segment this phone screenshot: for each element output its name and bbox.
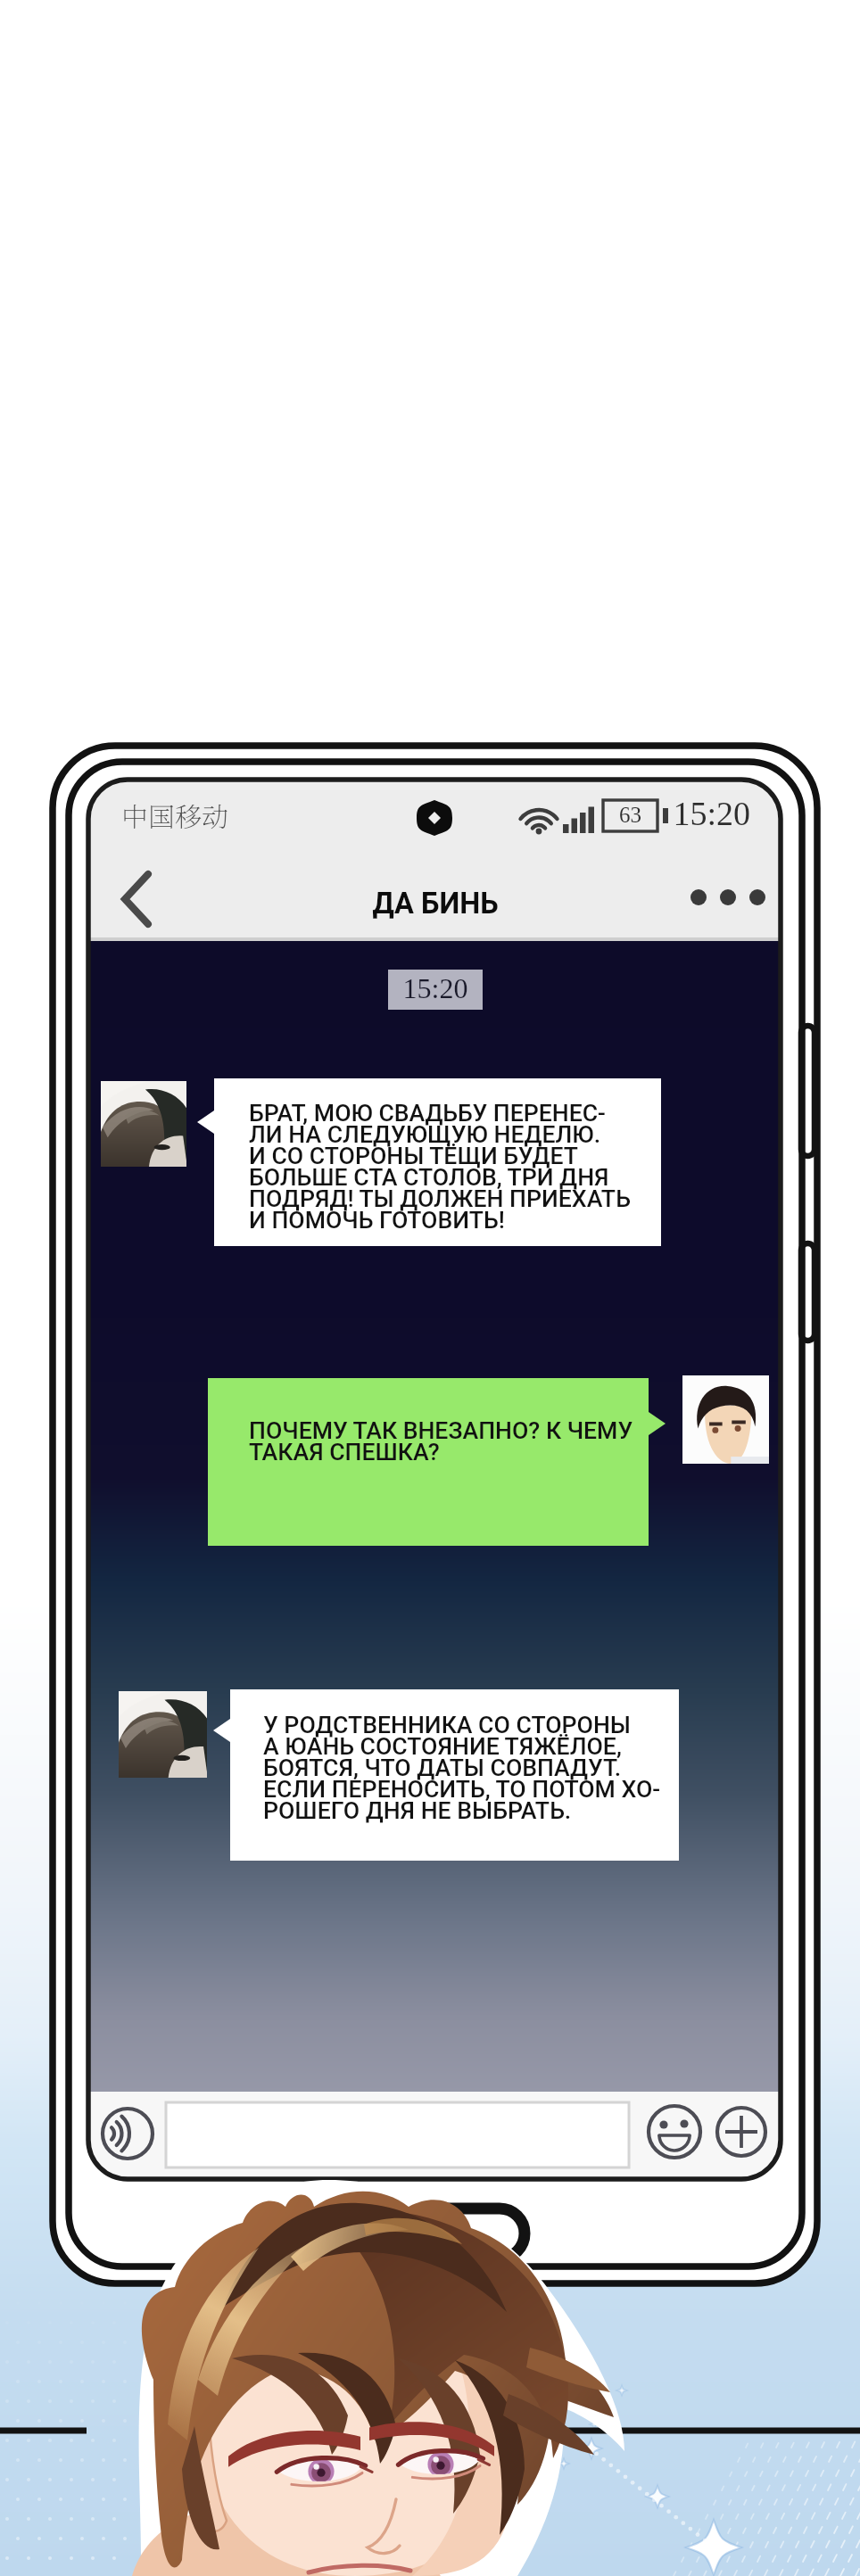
- button[interactable]: Emoji: [647, 2104, 702, 2159]
- button[interactable]: Voice message: [100, 2106, 155, 2161]
- button[interactable]: Add attachment: [715, 2106, 767, 2158]
- staticText: БРАТ, МОЮ СВАДЬБУ ПЕРЕНЕС- ЛИ НА СЛЕДУЮЩ…: [249, 1099, 631, 1234]
- staticText: 63: [603, 803, 657, 847]
- staticText: 15:20: [624, 795, 750, 863]
- staticText: ПОЧЕМУ ТАК ВНЕЗАПНО? К ЧЕМУ ТАКАЯ СПЕШКА…: [249, 1416, 633, 1466]
- staticText: ДА БИНЬ: [88, 887, 782, 945]
- button[interactable]: Message input: [166, 2102, 629, 2167]
- staticText: У РОДСТВЕННИКА СО СТОРОНЫ А ЮАНЬ СОСТОЯН…: [263, 1711, 661, 1824]
- button[interactable]: Back: [94, 856, 174, 941]
- button[interactable]: More options: [674, 856, 776, 941]
- staticText: 15:20: [388, 972, 483, 1029]
- staticText: 中国移动: [121, 796, 228, 834]
